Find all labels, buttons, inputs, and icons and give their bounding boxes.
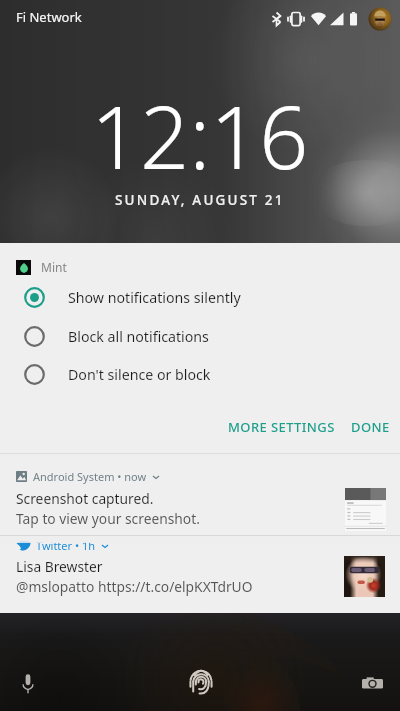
staticText: 12:16: [91, 77, 309, 194]
staticText: @mslopatto https://t.co/elpKXTdrUO: [16, 577, 253, 596]
button[interactable]: Twitter • 1h: [0, 537, 400, 613]
staticText: DONE: [351, 418, 390, 436]
staticText: MORE SETTINGS: [228, 418, 335, 436]
staticText: Don't silence or block: [68, 365, 211, 384]
staticText: Android System • now: [33, 469, 147, 484]
button[interactable]: Show notifications silently: [0, 278, 400, 316]
button[interactable]: Camera: [350, 661, 395, 705]
button[interactable]: Android System • now: [0, 454, 400, 536]
button[interactable]: MORE SETTINGS: [220, 413, 343, 441]
button[interactable]: Fingerprint unlock: [179, 660, 223, 704]
staticText: Fi Network: [16, 8, 82, 26]
staticText: SUNDAY, AUGUST 21: [115, 191, 285, 209]
staticText: Show notifications silently: [68, 288, 241, 307]
staticText: Mint: [41, 259, 67, 275]
staticText: Block all notifications: [68, 327, 209, 346]
staticText: Twitter • 1h: [36, 538, 96, 553]
staticText: Tap to view your screenshot.: [16, 509, 200, 528]
button[interactable]: Voice assistant: [5, 661, 50, 705]
staticText: Lisa Brewster: [16, 557, 103, 576]
button[interactable]: DONE: [343, 413, 398, 441]
staticText: Screenshot captured.: [16, 489, 154, 508]
button[interactable]: Block all notifications: [0, 317, 400, 355]
button[interactable]: Don't silence or block: [0, 355, 400, 393]
